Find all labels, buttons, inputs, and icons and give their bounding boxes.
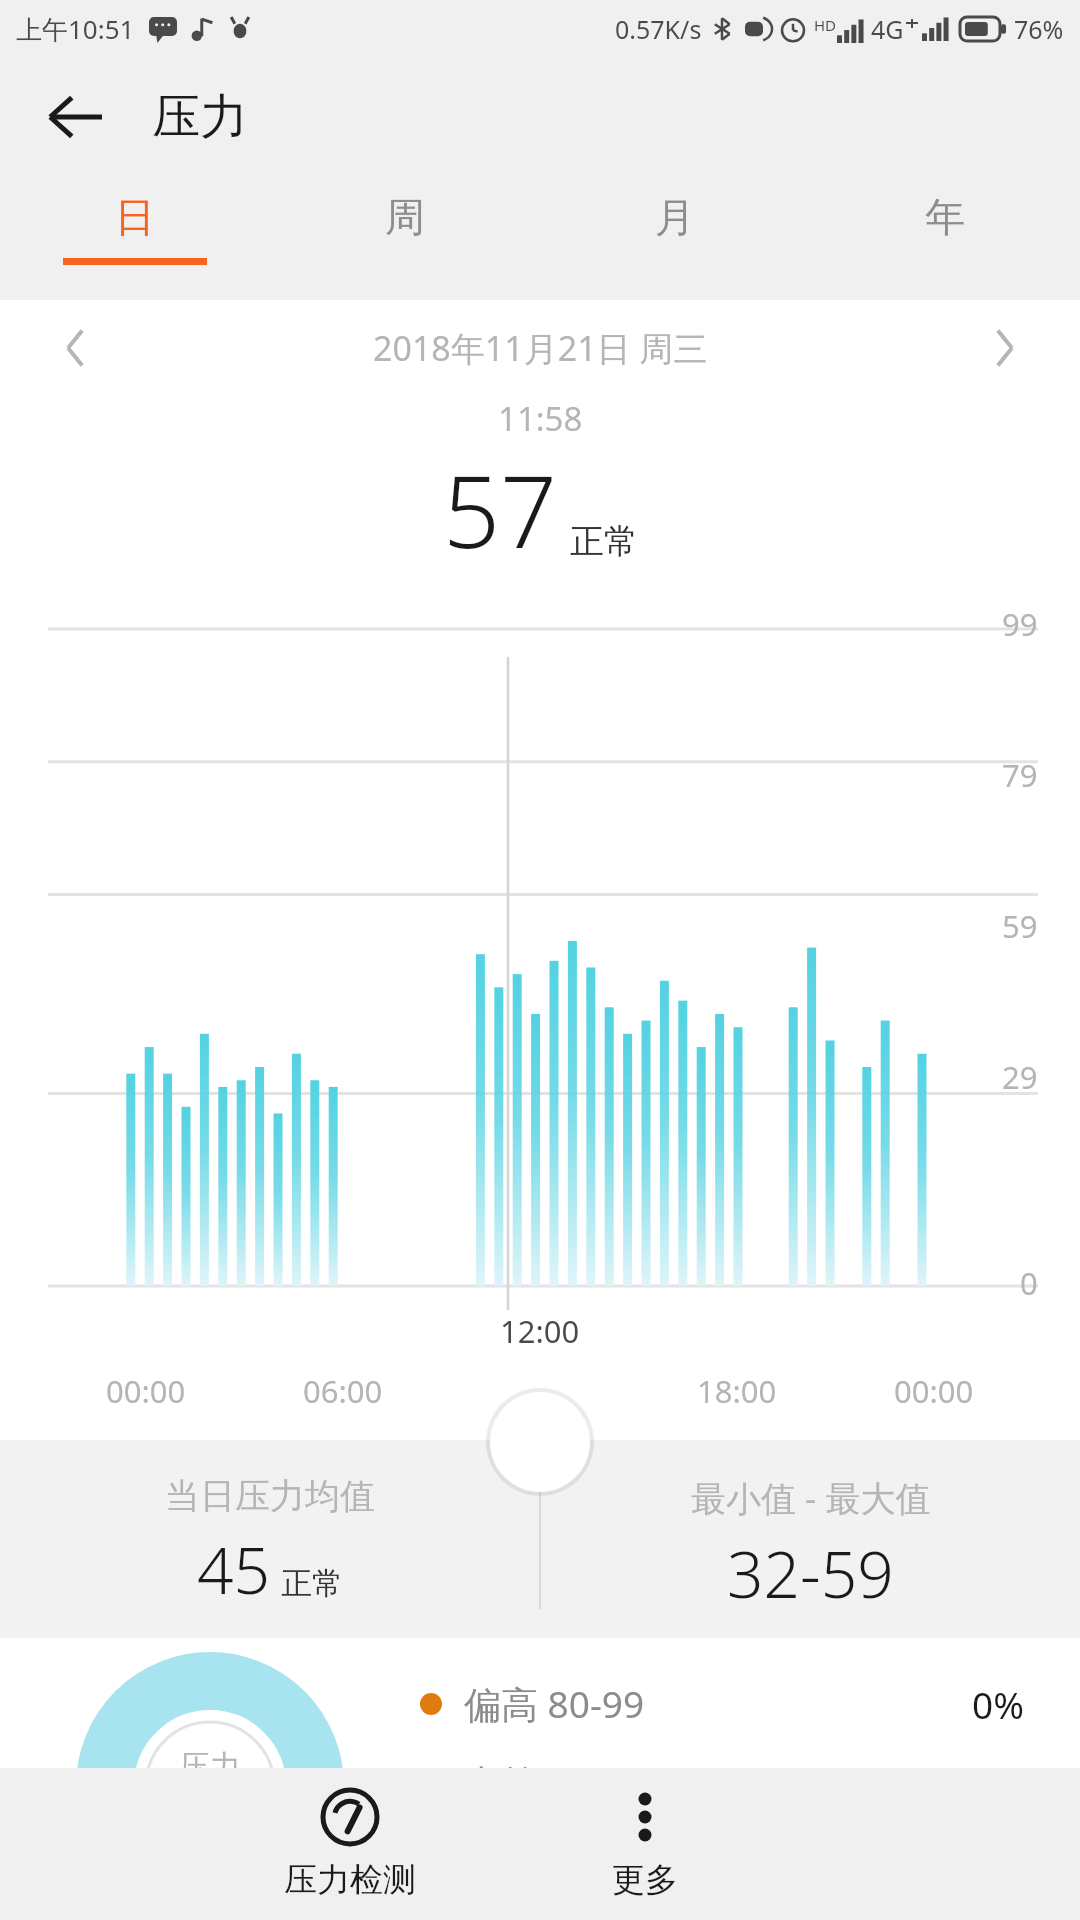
staticText: 29	[1002, 1056, 1038, 1098]
staticText: 0.57K/s	[615, 12, 702, 46]
staticText: 中等 60-79	[464, 1757, 645, 1808]
button[interactable]: 年	[810, 176, 1080, 288]
staticText: 年	[925, 192, 965, 242]
staticText: 32-59	[727, 1530, 894, 1617]
button[interactable]: Next day	[968, 312, 1040, 384]
staticText: 00:00	[106, 1370, 186, 1412]
button[interactable]: 日	[0, 176, 270, 288]
staticText: 压力检测	[284, 1859, 416, 1901]
staticText: 日	[115, 192, 155, 242]
staticText: 更多	[612, 1859, 678, 1901]
staticText: 06:00	[303, 1370, 383, 1412]
button[interactable]: 中等 60-79	[420, 1757, 1024, 1808]
staticText: 18:00	[697, 1370, 777, 1412]
staticText: 当日压力均值	[165, 1474, 375, 1518]
staticText: 周	[385, 192, 425, 242]
staticText: 2018年11月21日 周三	[373, 325, 708, 371]
staticText: 上午10:51	[16, 11, 135, 47]
staticText: 0	[1020, 1262, 1038, 1304]
staticText: 12:00	[500, 1310, 580, 1352]
button[interactable]: 月	[540, 176, 810, 288]
button[interactable]: 更多	[550, 1768, 740, 1920]
staticText: 0%	[972, 1758, 1024, 1808]
staticText: 4G	[871, 12, 904, 46]
staticText: 00:00	[894, 1370, 974, 1412]
button[interactable]: 压力检测	[250, 1768, 450, 1920]
button[interactable]: Back	[32, 74, 118, 160]
staticText: 45	[197, 1526, 271, 1613]
staticText: 偏高 80-99	[464, 1678, 645, 1729]
staticText: 57	[443, 441, 558, 577]
staticText: 正常	[281, 1564, 343, 1603]
staticText: 压力	[152, 87, 248, 147]
button[interactable]: Previous day	[40, 312, 112, 384]
staticText: 11:58	[498, 396, 583, 441]
staticText: 99	[1002, 603, 1038, 645]
staticText: 正常	[570, 520, 638, 563]
staticText: 76%	[1014, 12, 1064, 46]
button[interactable]: 周	[270, 176, 540, 288]
staticText: 79	[1002, 754, 1038, 796]
staticText: 0%	[972, 1679, 1024, 1729]
staticText: 最小值 - 最大值	[691, 1474, 931, 1522]
staticText: 月	[655, 192, 695, 242]
staticText: 压力	[179, 1747, 241, 1786]
staticText: HD	[814, 15, 837, 35]
button[interactable]: 偏高 80-99	[420, 1678, 1024, 1729]
staticText: 59	[1002, 905, 1038, 947]
